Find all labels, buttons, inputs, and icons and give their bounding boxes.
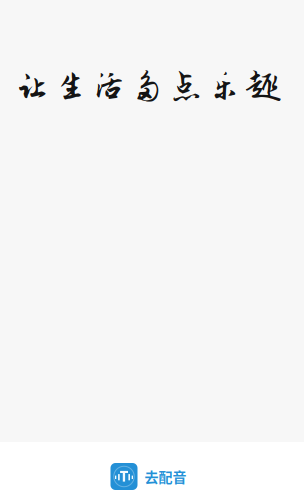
staticText: 让生活多点乐趣 bbox=[15, 68, 280, 105]
button[interactable]: 去配音 bbox=[110, 463, 186, 490]
staticText: 去配音 bbox=[144, 466, 186, 487]
